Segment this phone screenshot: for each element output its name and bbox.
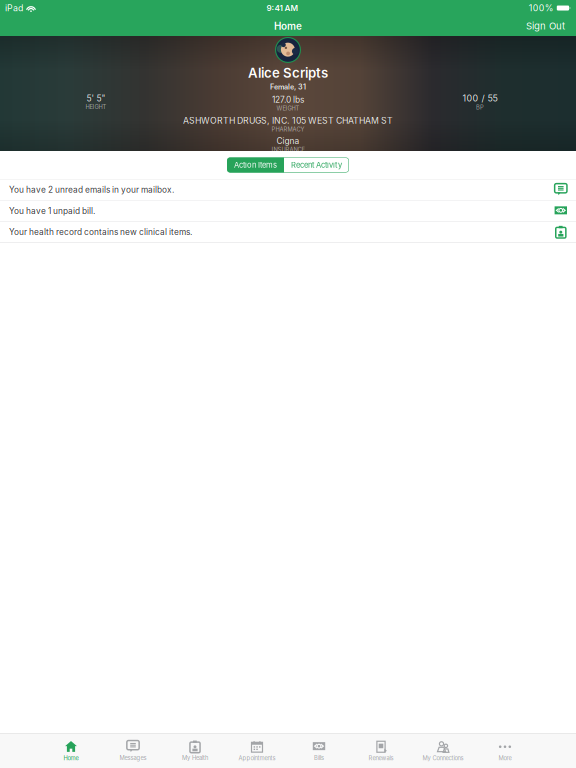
staticText: INSURANCE bbox=[271, 146, 304, 153]
staticText: 127.0 lbs bbox=[272, 95, 304, 105]
staticText: More bbox=[498, 755, 511, 762]
button[interactable]: You have 2 unread emails in your mailbox… bbox=[0, 180, 576, 201]
staticText: You have 2 unread emails in your mailbox… bbox=[9, 185, 174, 195]
staticText: Home bbox=[63, 755, 78, 762]
button[interactable]: More bbox=[474, 737, 536, 764]
staticText: You have 1 unpaid bill. bbox=[9, 206, 95, 216]
staticText: Messages bbox=[119, 754, 146, 761]
staticText: HEIGHT bbox=[85, 103, 106, 110]
staticText: 100 / 55 bbox=[462, 93, 497, 104]
staticText: Recent Activity bbox=[291, 160, 342, 170]
staticText: Home bbox=[274, 20, 302, 32]
staticText: Cigna bbox=[276, 136, 299, 146]
staticText: 5' 5" bbox=[86, 93, 105, 103]
staticText: Alice Scripts bbox=[248, 65, 328, 81]
staticText: Bills bbox=[314, 754, 324, 761]
staticText: PHARMACY bbox=[271, 126, 304, 133]
staticText: Renewals bbox=[368, 755, 393, 762]
staticText: Sign Out bbox=[526, 20, 565, 32]
staticText: iPad bbox=[5, 3, 23, 13]
staticText: Your health record contains new clinical… bbox=[9, 227, 192, 237]
button[interactable]: Action Items bbox=[227, 157, 284, 172]
staticText: 9:41 AM bbox=[266, 3, 298, 13]
staticText: Appointments bbox=[238, 755, 275, 762]
button[interactable]: My Connections bbox=[412, 737, 474, 764]
staticText: WEIGHT bbox=[276, 105, 299, 112]
button[interactable]: Bills bbox=[288, 737, 350, 764]
button[interactable]: My Health bbox=[164, 737, 226, 764]
staticText: BP bbox=[476, 104, 484, 111]
button[interactable]: You have 1 unpaid bill. bbox=[0, 201, 576, 222]
staticText: Female, 31 bbox=[270, 82, 306, 91]
staticText: My Health bbox=[182, 754, 208, 761]
button[interactable]: Sign Out bbox=[516, 16, 576, 36]
staticText: ASHWORTH DRUGS, INC. 105 WEST CHATHAM ST bbox=[183, 115, 393, 126]
button[interactable]: Messages bbox=[102, 737, 164, 764]
staticText: 100% bbox=[529, 3, 554, 13]
button[interactable]: Recent Activity bbox=[284, 157, 349, 172]
button[interactable]: Your health record contains new clinical… bbox=[0, 222, 576, 243]
button[interactable]: Appointments bbox=[226, 737, 288, 764]
staticText: Action Items bbox=[234, 160, 277, 170]
staticText: My Connections bbox=[422, 755, 463, 762]
button[interactable]: Home bbox=[40, 737, 102, 764]
button[interactable]: Renewals bbox=[350, 737, 412, 764]
